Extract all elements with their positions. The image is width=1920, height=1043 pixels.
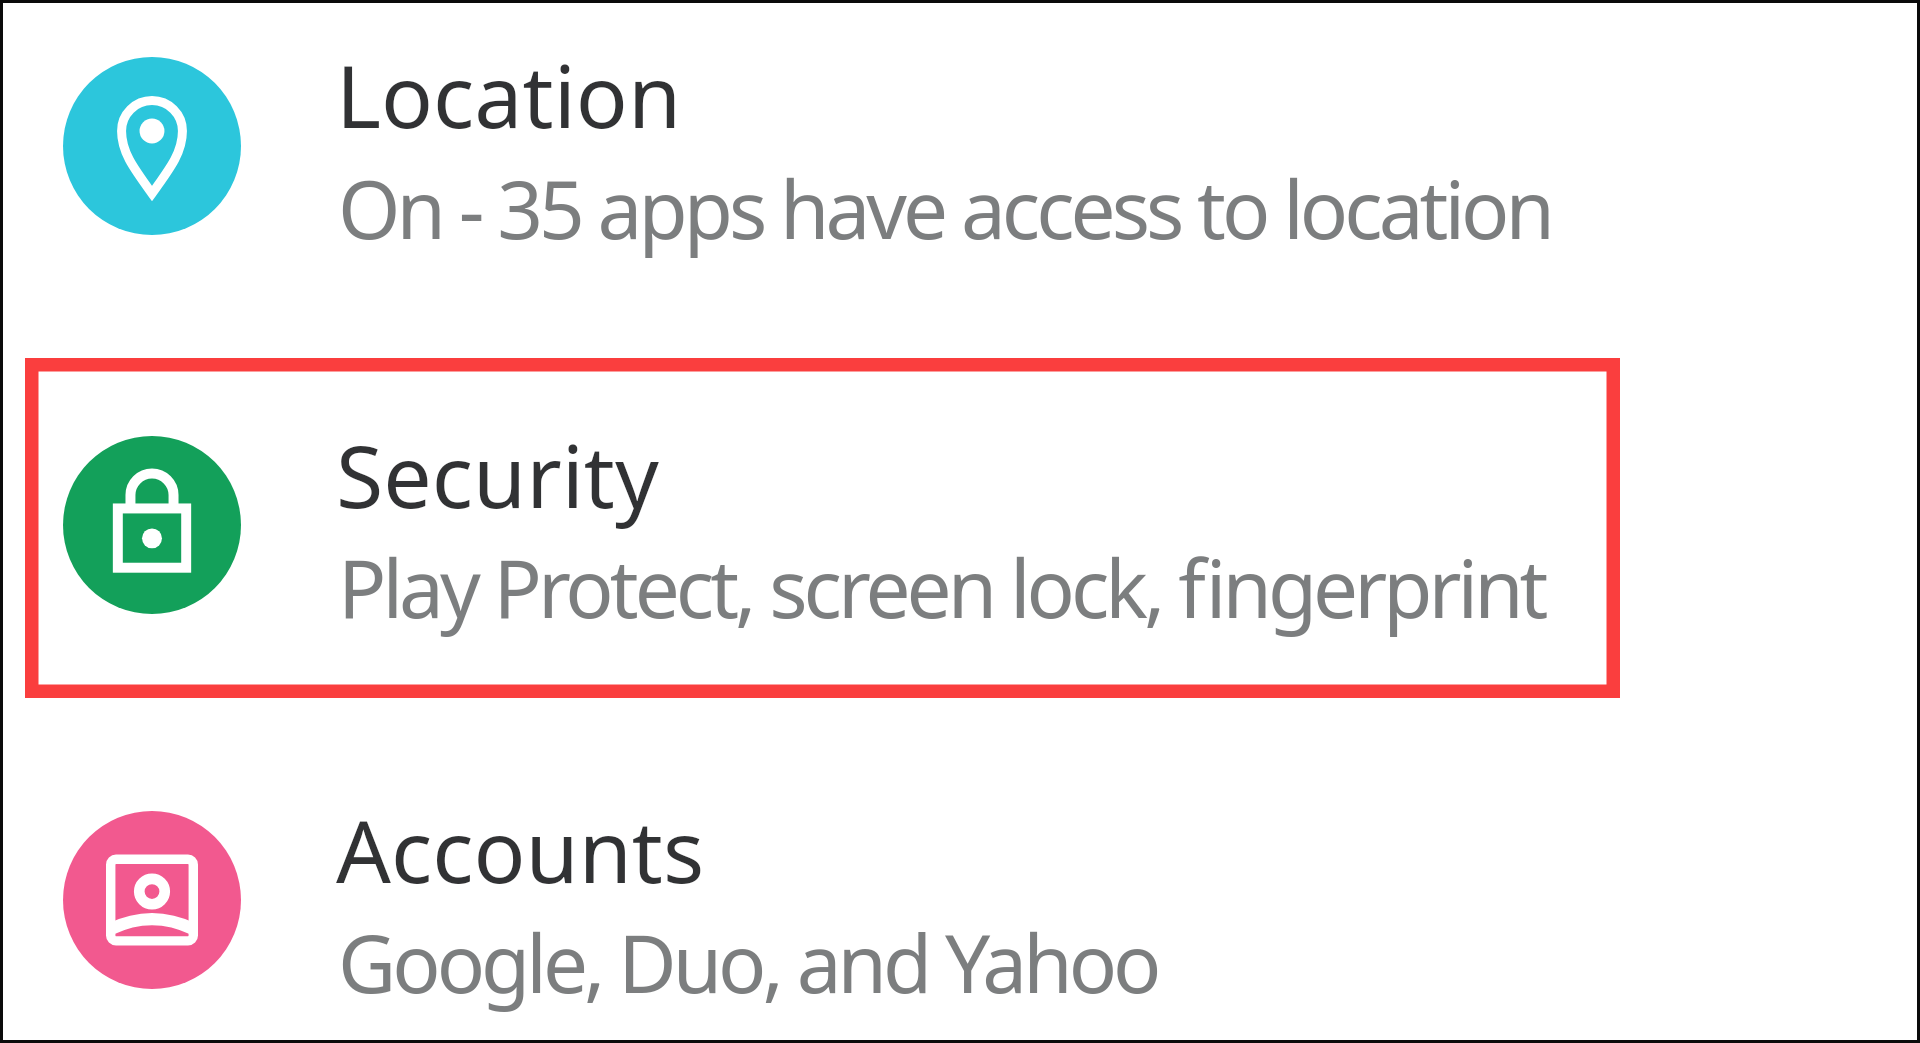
staticText: Security	[336, 416, 659, 533]
other: Location	[63, 57, 241, 235]
other: Accounts	[63, 811, 241, 989]
button[interactable]: Accounts	[3, 712, 1917, 1037]
staticText: Accounts	[336, 791, 705, 908]
staticText: On - 35 apps have access to location	[338, 153, 1551, 262]
staticText: Location	[336, 36, 682, 153]
button[interactable]: Location	[3, 0, 1917, 340]
staticText: Play Protect, screen lock, fingerprint	[338, 532, 1545, 641]
other: Security	[63, 436, 241, 614]
button[interactable]: Security	[3, 352, 1917, 700]
staticText: Google, Duo, and Yahoo	[338, 907, 1158, 1016]
